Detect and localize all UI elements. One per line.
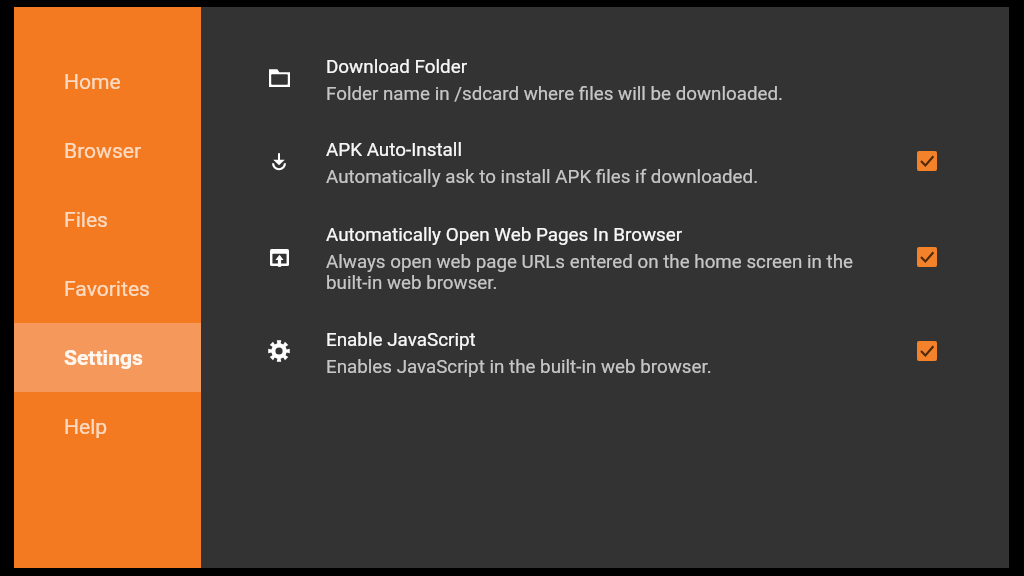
button[interactable]: Settings xyxy=(14,323,201,392)
button[interactable]: APK Auto-Install xyxy=(215,129,994,218)
staticText: Browser xyxy=(64,138,142,163)
staticText: Automatically ask to install APK files i… xyxy=(326,166,759,187)
button[interactable]: Home xyxy=(14,47,201,116)
staticText: Files xyxy=(64,207,108,232)
staticText: Enables JavaScript in the built-in web b… xyxy=(326,356,712,377)
staticText: Always open web page URLs entered on the… xyxy=(326,251,871,293)
button[interactable]: Enable JavaScript xyxy=(215,319,994,408)
button[interactable]: Toggle APK Auto-Install xyxy=(917,151,937,171)
staticText: Folder name in /sdcard where files will … xyxy=(326,83,783,104)
staticText: Download Folder xyxy=(326,56,468,78)
button[interactable]: Help xyxy=(14,392,201,461)
button[interactable]: Download Folder xyxy=(215,46,994,135)
staticText: Enable JavaScript xyxy=(326,329,476,351)
staticText: APK Auto-Install xyxy=(326,139,463,161)
button[interactable]: Browser xyxy=(14,116,201,185)
staticText: Settings xyxy=(64,345,143,370)
button[interactable]: Toggle Automatically Open Web Pages In B… xyxy=(917,247,937,267)
staticText: Favorites xyxy=(64,276,150,301)
button[interactable]: Files xyxy=(14,185,201,254)
button[interactable]: Toggle Enable JavaScript xyxy=(917,341,937,361)
button[interactable]: Favorites xyxy=(14,254,201,323)
button[interactable]: Automatically Open Web Pages In Browser xyxy=(215,214,994,324)
staticText: Automatically Open Web Pages In Browser xyxy=(326,224,683,246)
staticText: Home xyxy=(64,69,121,94)
staticText: Help xyxy=(64,414,108,439)
